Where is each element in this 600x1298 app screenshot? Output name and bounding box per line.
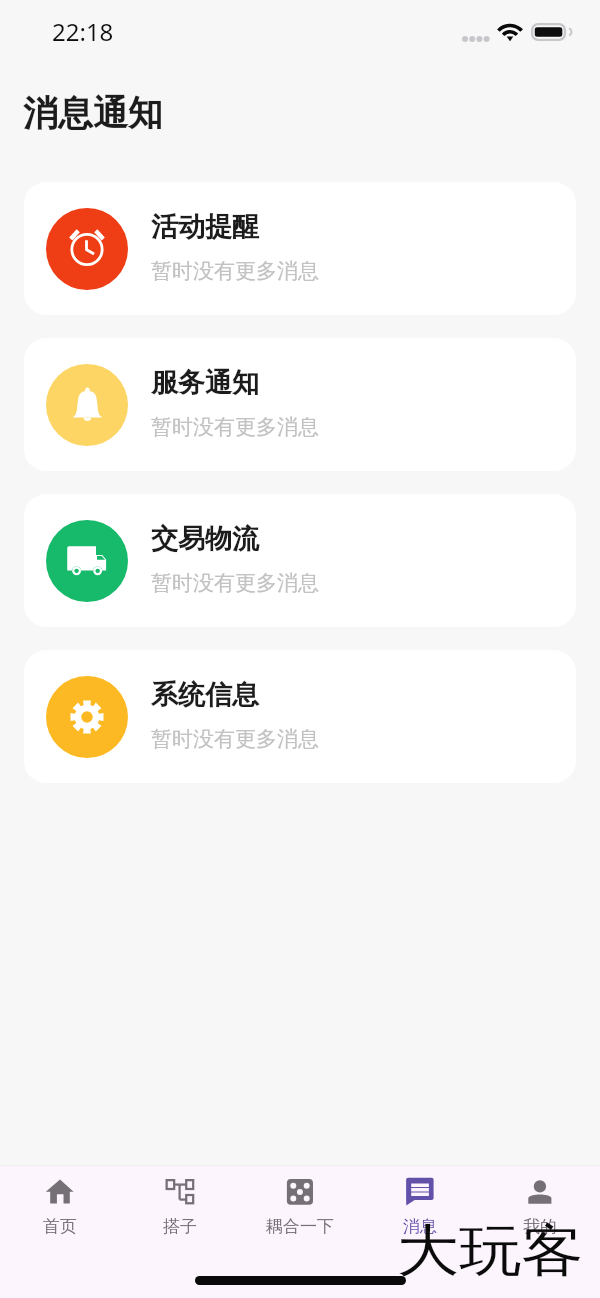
staticText: 暂时没有更多消息 — [151, 726, 319, 752]
staticText: 22:18 — [52, 15, 114, 48]
staticText: 交易物流 — [151, 522, 259, 556]
button[interactable]: Profile — [480, 1166, 600, 1245]
button[interactable]: Messages — [360, 1166, 480, 1245]
other: Partners — [165, 1177, 195, 1207]
button[interactable]: 交易物流 — [24, 494, 576, 627]
staticText: 暂时没有更多消息 — [151, 258, 319, 284]
button[interactable]: Match — [240, 1166, 360, 1245]
button[interactable]: Home — [0, 1166, 120, 1245]
staticText: 消息 — [403, 1216, 437, 1237]
staticText: 大玩客 — [397, 1216, 583, 1287]
staticText: 活动提醒 — [151, 210, 259, 244]
button[interactable]: 系统信息 — [24, 650, 576, 783]
staticText: 首页 — [43, 1216, 77, 1237]
other: Messages — [405, 1177, 435, 1207]
other: Match — [285, 1177, 315, 1207]
button[interactable]: Partners — [120, 1166, 240, 1245]
other: Home — [45, 1177, 75, 1207]
button[interactable]: 服务通知 — [24, 338, 576, 471]
staticText: 消息通知 — [23, 91, 163, 135]
other: Profile — [525, 1177, 555, 1207]
staticText: 服务通知 — [151, 366, 259, 400]
staticText: 暂时没有更多消息 — [151, 414, 319, 440]
button[interactable]: 活动提醒 — [24, 182, 576, 315]
staticText: 搭子 — [163, 1216, 197, 1237]
staticText: 暂时没有更多消息 — [151, 570, 319, 596]
staticText: 耦合一下 — [266, 1216, 334, 1237]
staticText: 我的 — [523, 1216, 557, 1237]
staticText: 系统信息 — [151, 678, 259, 712]
